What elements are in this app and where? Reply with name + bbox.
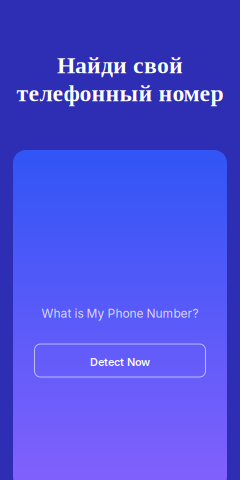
staticText: Найди свой [57, 52, 183, 78]
button[interactable]: Detect Now [34, 344, 205, 377]
staticText: Detect Now [90, 355, 150, 369]
staticText: What is My Phone Number? [41, 306, 198, 320]
staticText: телефонный номер [16, 80, 223, 106]
